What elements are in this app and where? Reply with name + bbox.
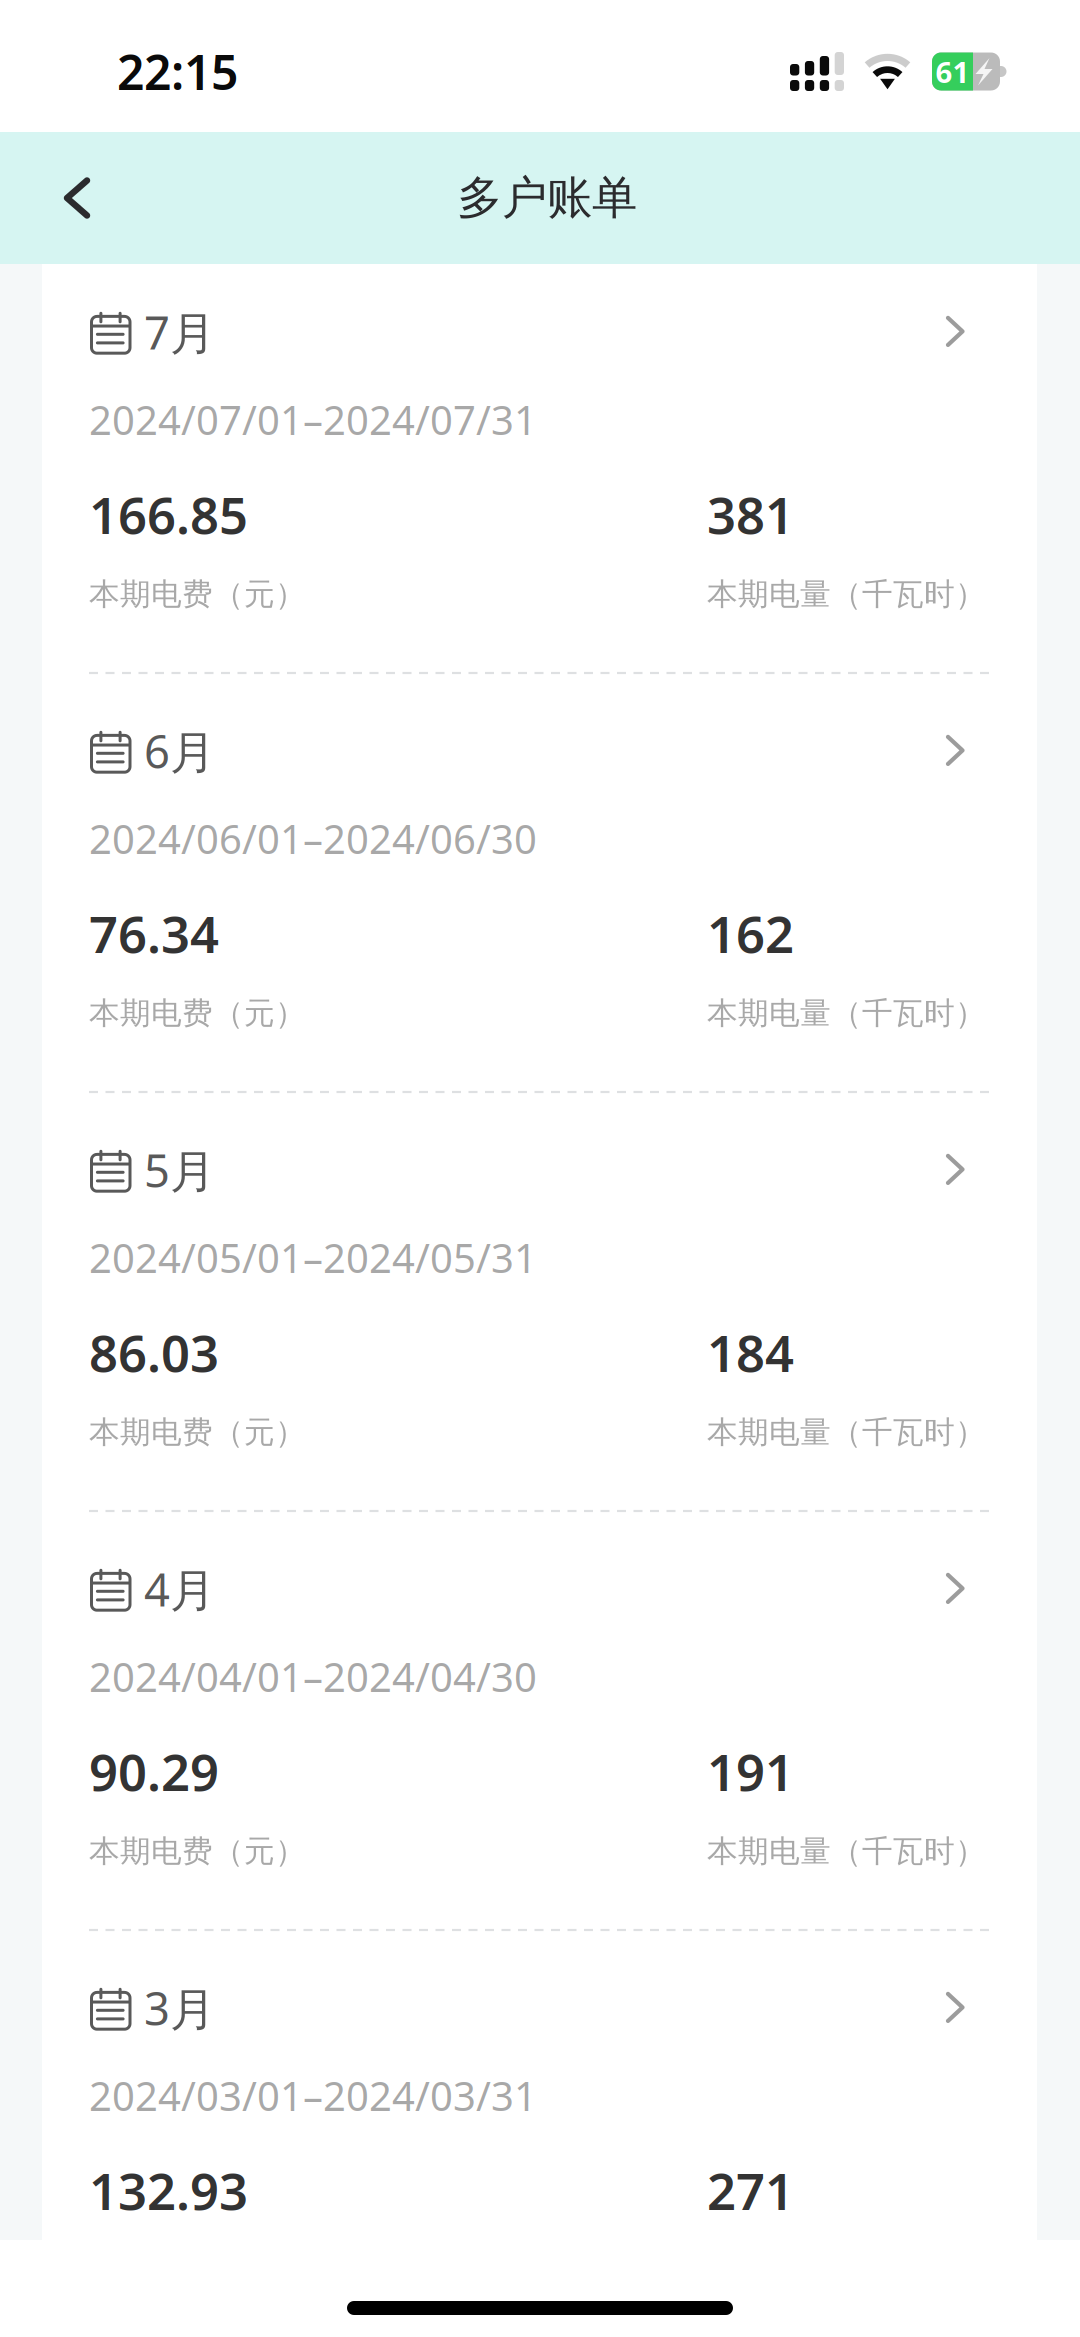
staticText: 162 (707, 900, 794, 967)
staticText: 2024/07/01–2024/07/31 (89, 393, 537, 446)
staticText: 86.03 (89, 1319, 219, 1386)
staticText: 本期电费（元） (89, 1413, 306, 1451)
staticText: 本期电量（千瓦时） (707, 994, 986, 1032)
staticText: 本期电费（元） (89, 1832, 306, 1870)
staticText: 本期电费（元） (89, 575, 306, 613)
staticText: 76.34 (89, 900, 219, 967)
button[interactable]: Back (0, 133, 131, 263)
staticText: 2024/04/01–2024/04/30 (89, 1650, 537, 1703)
staticText: 381 (707, 481, 794, 548)
staticText: 4月 (144, 1559, 215, 1619)
staticText: 191 (707, 1738, 794, 1805)
staticText: 61 (935, 52, 969, 91)
staticText: 本期电量（千瓦时） (707, 575, 986, 613)
staticText: 90.29 (89, 1738, 219, 1805)
staticText: 2024/05/01–2024/05/31 (89, 1231, 537, 1284)
staticText: 271 (707, 2157, 794, 2224)
staticText: 184 (707, 1319, 794, 1386)
staticText: 22:15 (117, 40, 238, 103)
staticText: 6月 (144, 721, 215, 781)
button[interactable]: 5月 (42, 1093, 1037, 1512)
staticText: 132.93 (89, 2157, 248, 2224)
button[interactable]: 7月 (42, 264, 1037, 674)
staticText: 多户账单 (457, 170, 637, 226)
staticText: 本期电量（千瓦时） (707, 1413, 986, 1451)
staticText: 本期电量（千瓦时） (707, 1832, 986, 1870)
staticText: 本期电费（元） (89, 994, 306, 1032)
staticText: 7月 (144, 302, 215, 362)
staticText: 166.85 (89, 481, 248, 548)
staticText: 2024/03/01–2024/03/31 (89, 2069, 537, 2122)
staticText: 5月 (144, 1140, 215, 1200)
button[interactable]: 6月 (42, 674, 1037, 1093)
button[interactable]: 3月 (42, 1931, 1037, 2337)
staticText: 2024/06/01–2024/06/30 (89, 812, 537, 865)
staticText: 3月 (144, 1978, 215, 2038)
button[interactable]: 4月 (42, 1512, 1037, 1931)
